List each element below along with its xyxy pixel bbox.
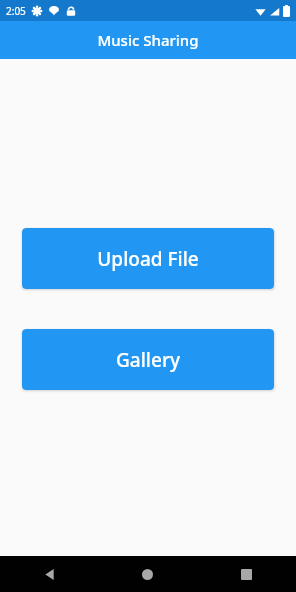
staticText: 2:05 [6, 4, 26, 18]
staticText: Gallery [116, 347, 180, 373]
staticText: Music Sharing [97, 30, 199, 50]
button[interactable]: Home [98, 556, 197, 592]
button[interactable]: Upload File [22, 228, 274, 289]
button[interactable]: Gallery [22, 329, 274, 390]
staticText: Upload File [97, 246, 199, 272]
button[interactable]: Back [0, 556, 98, 592]
button[interactable]: Recent apps [197, 556, 296, 592]
